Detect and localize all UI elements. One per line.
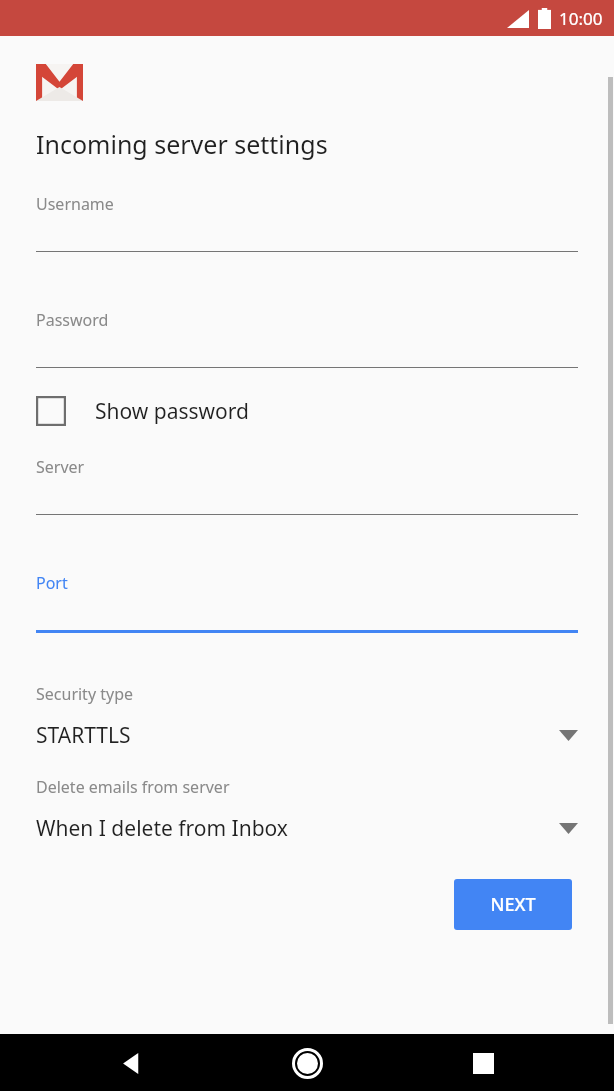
button[interactable]: Delete emails from server [0, 776, 614, 843]
button[interactable]: Password [0, 309, 614, 368]
staticText: When I delete from Inbox [36, 814, 559, 843]
staticText: Username [36, 193, 114, 215]
button[interactable]: Show password [0, 388, 614, 434]
button[interactable]: NEXT [454, 879, 572, 930]
button[interactable]: Port [0, 572, 614, 633]
staticText: Security type [36, 683, 134, 705]
staticText: Incoming server settings [36, 127, 328, 161]
button[interactable]: Back [110, 1042, 152, 1084]
button[interactable]: Recent apps [462, 1042, 504, 1084]
staticText: Delete emails from server [36, 776, 230, 798]
button[interactable]: Username [0, 193, 614, 252]
staticText: Show password [95, 397, 249, 426]
button[interactable]: Security type [0, 683, 614, 750]
staticText: Server [36, 456, 85, 478]
staticText: Password [36, 309, 109, 331]
staticText: NEXT [490, 892, 536, 917]
button[interactable]: Home [285, 1041, 329, 1085]
staticText: Port [36, 572, 68, 594]
staticText: STARTTLS [36, 721, 559, 750]
staticText: 10:00 [559, 7, 603, 30]
button[interactable]: Server [0, 456, 614, 515]
